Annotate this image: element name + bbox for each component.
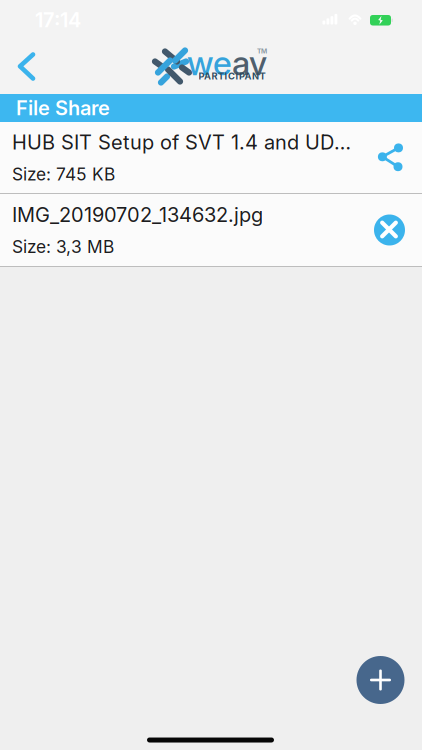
- staticText: 17:14: [35, 8, 81, 32]
- staticText: PARTICIPANT: [198, 70, 265, 81]
- staticText: IMG_20190702_134632.jpg: [12, 203, 263, 227]
- button[interactable]: Remove: [374, 214, 405, 245]
- button[interactable]: IMG_20190702_134632.jpg: [0, 194, 422, 266]
- button[interactable]: HUB SIT Setup of SVT 1.4 and UDC.pdf: [0, 122, 422, 193]
- button[interactable]: Back: [9, 46, 43, 87]
- staticText: we: [187, 43, 232, 83]
- staticText: File Share: [16, 96, 110, 120]
- staticText: HUB SIT Setup of SVT 1.4 and UDC.pdf: [12, 130, 361, 154]
- staticText: Size: 745 KB: [12, 164, 115, 184]
- staticText: av: [232, 43, 267, 83]
- button[interactable]: Share: [369, 139, 412, 176]
- staticText: Size: 3,3 MB: [12, 237, 114, 257]
- staticText: TM: [257, 47, 267, 55]
- button[interactable]: Add file: [356, 656, 404, 704]
